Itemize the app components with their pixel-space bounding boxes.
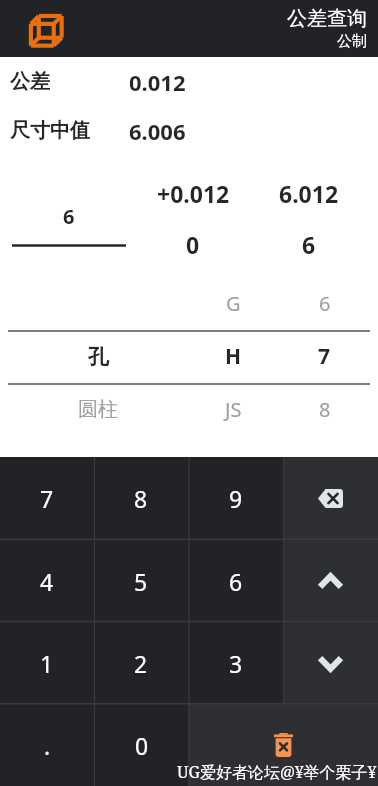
button[interactable]: 4 (0, 540, 94, 622)
button[interactable]: back (283, 457, 378, 540)
staticText: 0 (186, 229, 200, 260)
staticText: 6.012 (279, 178, 339, 209)
staticText: G (226, 290, 241, 317)
button[interactable]: 8 (94, 457, 188, 540)
button[interactable]: Clear (189, 704, 378, 786)
staticText: 9 (229, 483, 243, 514)
button[interactable]: . (0, 704, 94, 786)
staticText: 孔 (88, 344, 109, 370)
button[interactable]: 6 (279, 277, 370, 330)
button[interactable]: 0 (94, 704, 189, 786)
staticText: +0.012 (157, 178, 230, 209)
staticText: 圆柱 (78, 397, 118, 422)
button[interactable]: 6 (188, 540, 283, 622)
staticText: 6 (229, 566, 243, 597)
button[interactable]: 7 (279, 330, 370, 383)
staticText: 0.012 (129, 67, 186, 97)
button[interactable]: up (283, 540, 378, 622)
staticText: 2 (134, 648, 148, 679)
button[interactable]: 3 (188, 622, 283, 704)
staticText: 6 (319, 290, 331, 317)
staticText: 公差 (10, 69, 50, 94)
button[interactable]: 7 (0, 457, 94, 540)
staticText: 6.006 (129, 116, 186, 146)
staticText: 6 (63, 203, 75, 230)
staticText: 5 (134, 566, 148, 597)
staticText: 8 (319, 396, 331, 423)
staticText: 7 (40, 483, 54, 514)
button[interactable]: 9 (188, 457, 283, 540)
staticText: 公制 (337, 32, 367, 51)
staticText: 0 (135, 730, 149, 761)
button[interactable]: 2 (94, 622, 188, 704)
staticText: . (44, 730, 51, 761)
button[interactable]: down (283, 622, 378, 704)
staticText: 1 (40, 648, 54, 679)
staticText: 3 (229, 648, 243, 679)
staticText: 8 (134, 483, 148, 514)
staticText: H (225, 342, 242, 371)
staticText: 公差查询 (287, 6, 367, 31)
button[interactable]: 圆柱 (8, 383, 188, 436)
staticText: 4 (40, 566, 54, 597)
staticText: JS (225, 396, 242, 423)
button[interactable]: G (188, 277, 279, 330)
staticText: UG爱好者论坛@¥举个栗子¥ (177, 761, 377, 783)
staticText: 尺寸中值 (10, 118, 90, 143)
staticText: 6 (302, 229, 316, 260)
button[interactable]: 1 (0, 622, 94, 704)
button[interactable]: JS (188, 383, 279, 436)
staticText: 7 (318, 342, 331, 371)
button[interactable]: 8 (279, 383, 370, 436)
button[interactable]: H (188, 330, 279, 383)
button[interactable]: Logo (28, 12, 64, 48)
button[interactable]: 孔 (8, 330, 188, 383)
button[interactable]: 5 (94, 540, 188, 622)
